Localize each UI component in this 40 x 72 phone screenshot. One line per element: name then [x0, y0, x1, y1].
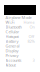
staticText: Accounts: [5, 57, 21, 63]
staticText: Battery: [5, 38, 18, 44]
staticText: Hotspot: [5, 34, 18, 39]
staticText: General: [5, 43, 19, 48]
staticText: 82%: [27, 38, 34, 44]
staticText: On: [29, 24, 34, 29]
staticText: Off: [28, 34, 34, 39]
staticText: Cellular: [5, 29, 19, 34]
staticText: Wi-Fi: [5, 19, 14, 25]
staticText: Home: [23, 19, 34, 25]
staticText: Bluetooth: [5, 24, 21, 29]
staticText: About: [5, 62, 15, 67]
staticText: Airplane Mode: [5, 15, 31, 20]
staticText: Privacy: [5, 53, 18, 58]
staticText: Display: [5, 48, 18, 53]
staticText: 3: [32, 57, 34, 63]
